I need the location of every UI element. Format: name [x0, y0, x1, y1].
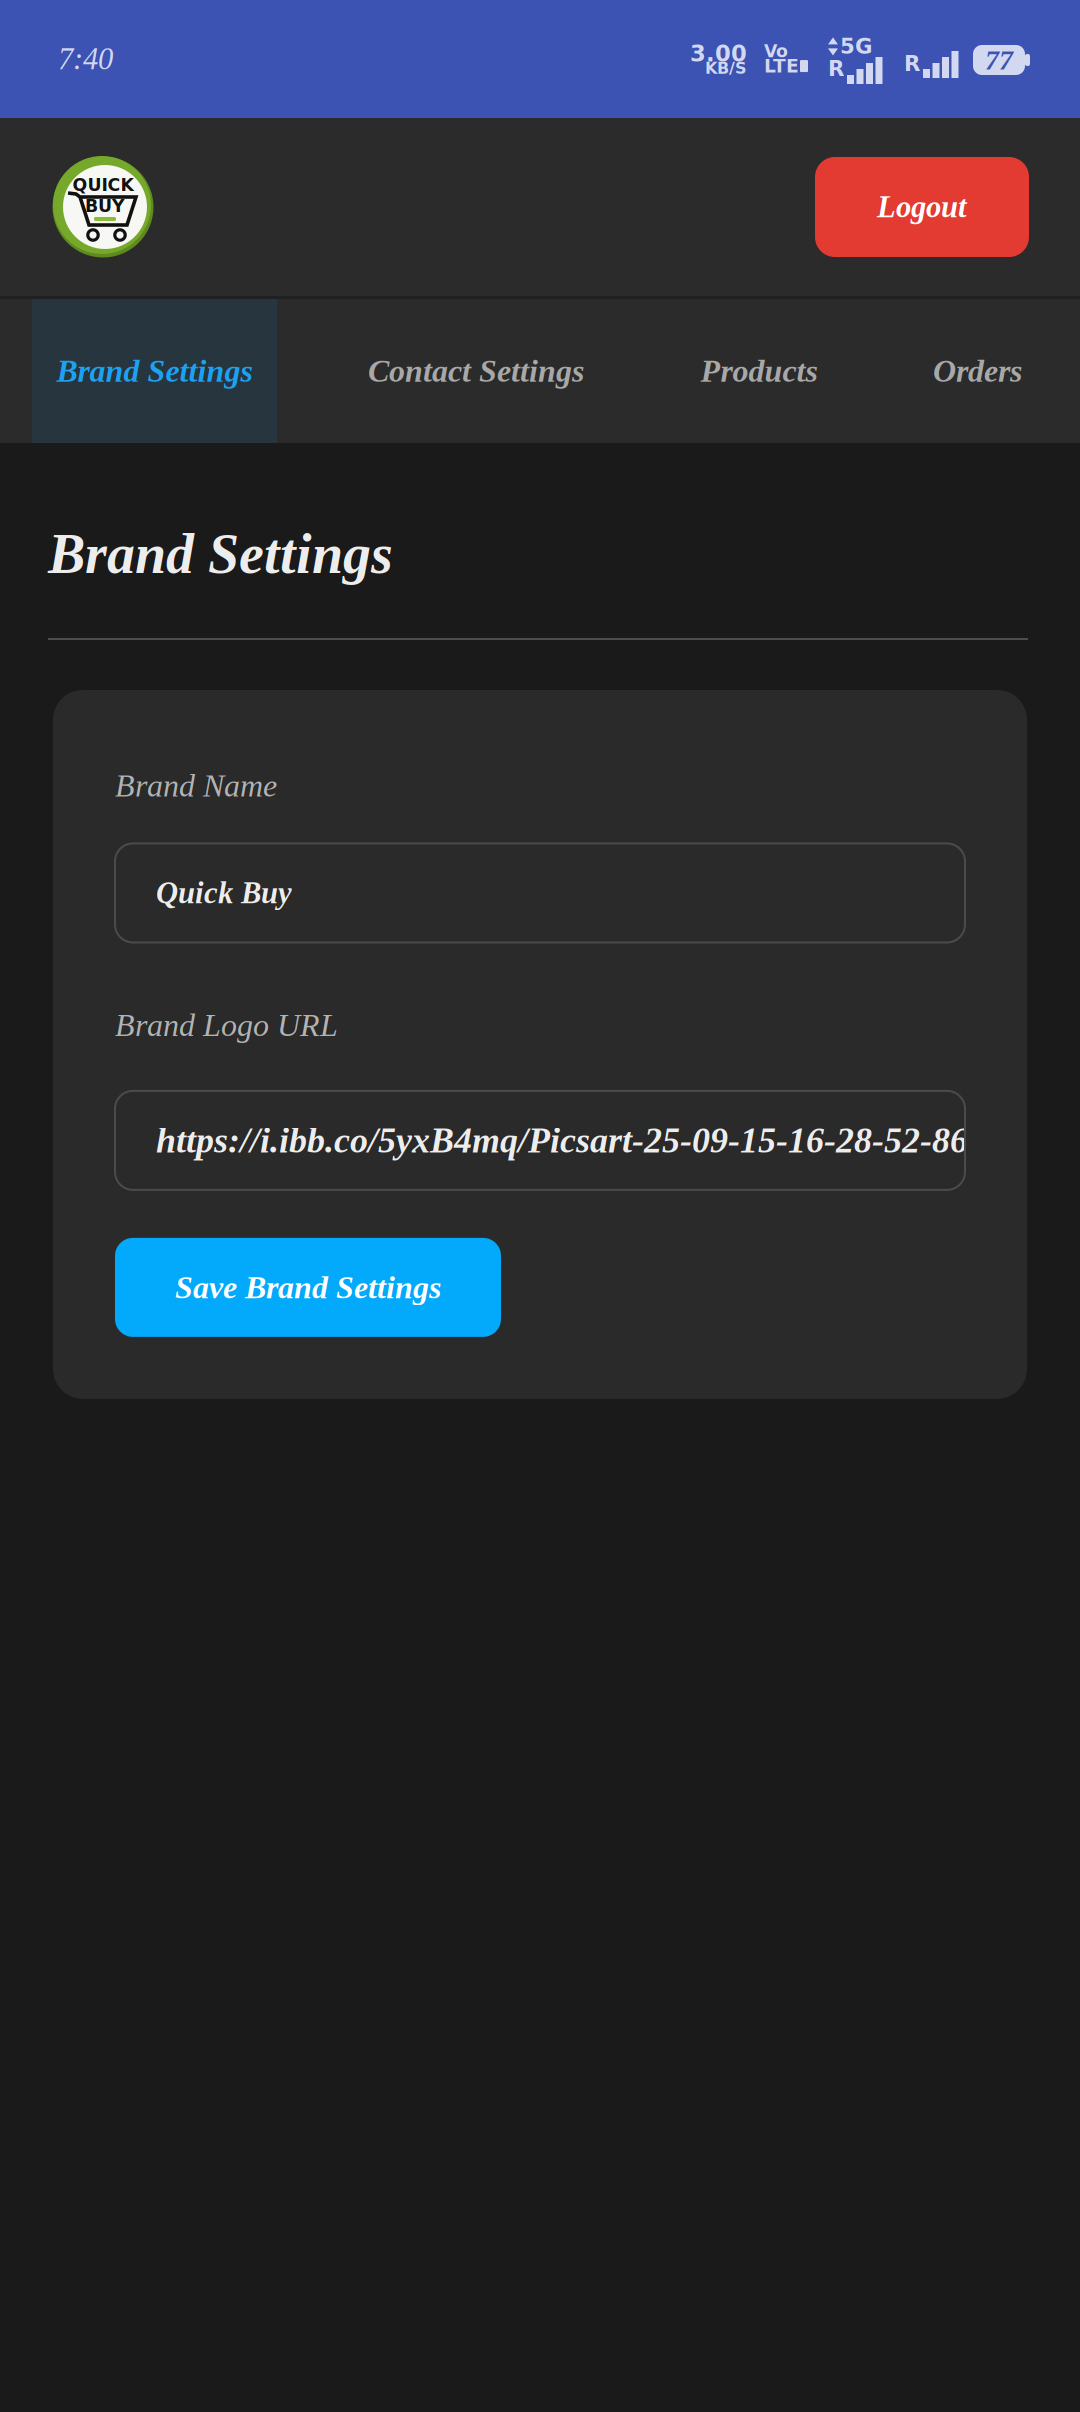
staticText: Brand Logo URL	[115, 1007, 338, 1043]
button[interactable]: Brand Settings	[32, 299, 277, 443]
staticText: 5G	[840, 34, 873, 59]
staticText: Quick Buy	[156, 876, 292, 910]
staticText: Logout	[877, 190, 967, 224]
staticText: https://i.ibb.co/5yxB4mq/Picsart-25-09-1…	[156, 1120, 986, 1160]
staticText: R	[904, 51, 920, 76]
staticText: Vo	[764, 41, 788, 61]
staticText: Save Brand Settings	[175, 1270, 441, 1305]
button[interactable]: Contact Settings	[344, 299, 608, 443]
staticText: Brand Name	[115, 768, 277, 803]
button[interactable]: Quick Buy home	[51, 155, 155, 259]
button[interactable]: https://i.ibb.co/5yxB4mq/Picsart-25-09-1…	[115, 1091, 965, 1190]
staticText: 7:40	[58, 42, 113, 76]
button[interactable]: Quick Buy	[115, 843, 965, 942]
staticText: Brand Settings	[48, 523, 393, 585]
staticText: BUY	[85, 196, 125, 216]
button[interactable]: Products	[675, 299, 843, 443]
button[interactable]: Orders	[906, 299, 1049, 443]
staticText: KB/S	[705, 59, 747, 77]
staticText: Products	[700, 353, 817, 389]
staticText: Brand Settings	[56, 353, 252, 389]
staticText: LTE	[764, 55, 799, 77]
button[interactable]: Save Brand Settings	[115, 1238, 501, 1337]
staticText: QUICK	[72, 175, 133, 195]
staticText: 77	[985, 44, 1013, 75]
staticText: Contact Settings	[368, 353, 584, 389]
button[interactable]: Logout	[815, 157, 1029, 257]
staticText: 3.00	[690, 40, 747, 67]
staticText: R	[828, 56, 844, 81]
staticText: Orders	[933, 353, 1022, 389]
